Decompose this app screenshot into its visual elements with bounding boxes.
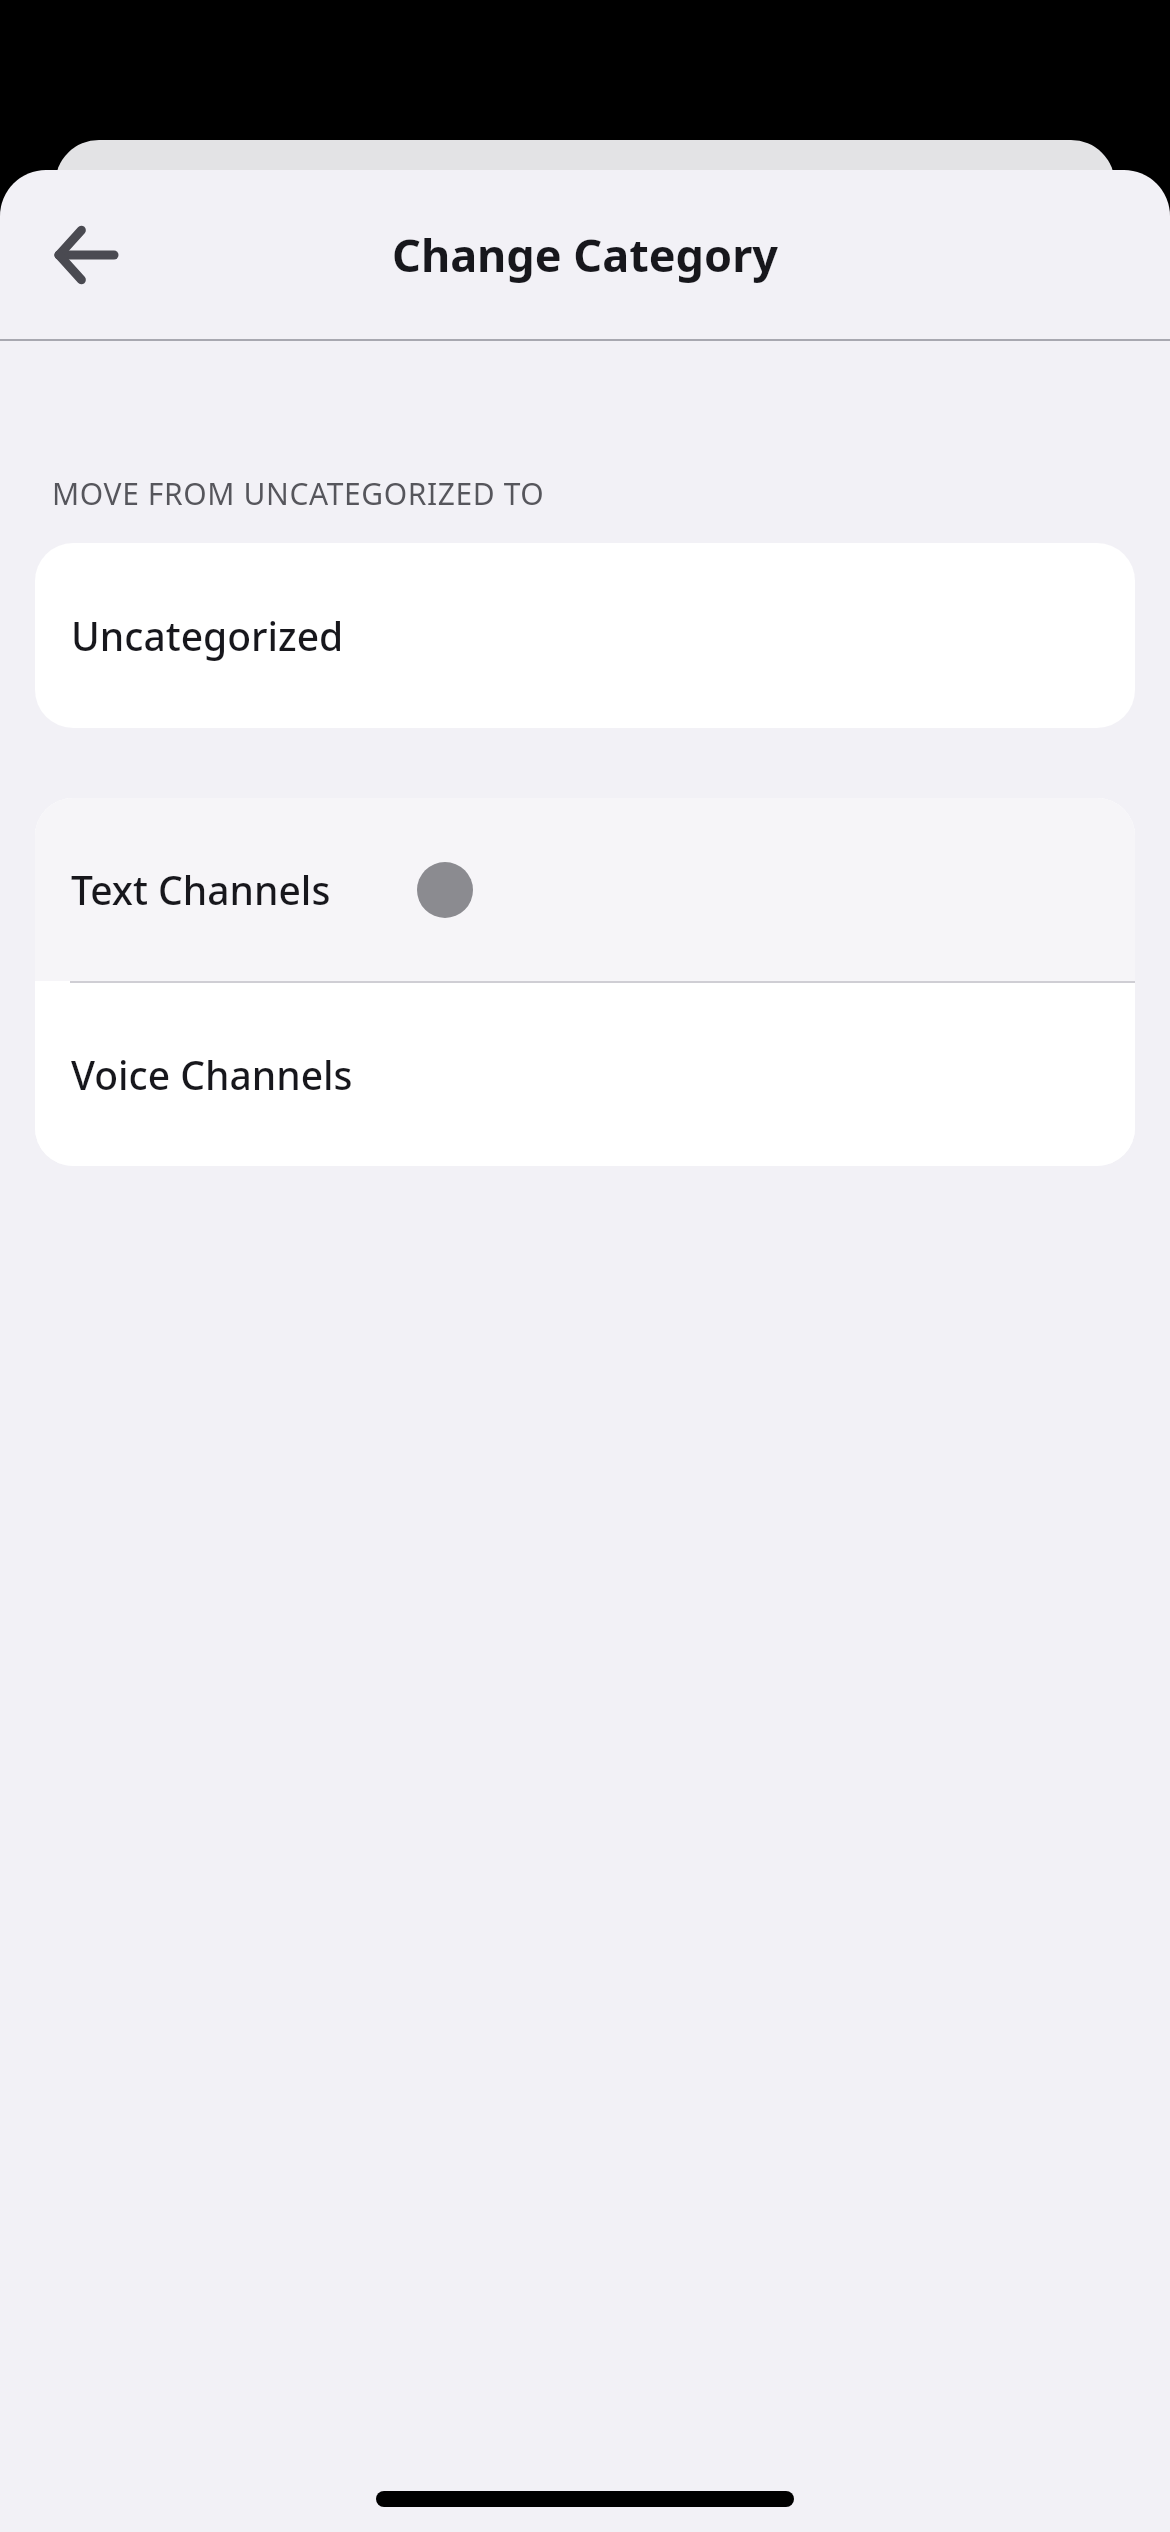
staticText: MOVE FROM UNCATEGORIZED TO — [52, 473, 545, 514]
staticText: Text Channels — [71, 863, 331, 916]
staticText: Change Category — [392, 224, 778, 285]
staticText: Uncategorized — [71, 609, 344, 662]
button[interactable]: Uncategorized — [35, 543, 1135, 728]
button[interactable]: Back — [28, 200, 143, 310]
button[interactable]: Voice Channels — [35, 983, 1135, 1166]
staticText: Voice Channels — [71, 1048, 353, 1101]
button[interactable]: Text Channels — [35, 798, 1135, 981]
